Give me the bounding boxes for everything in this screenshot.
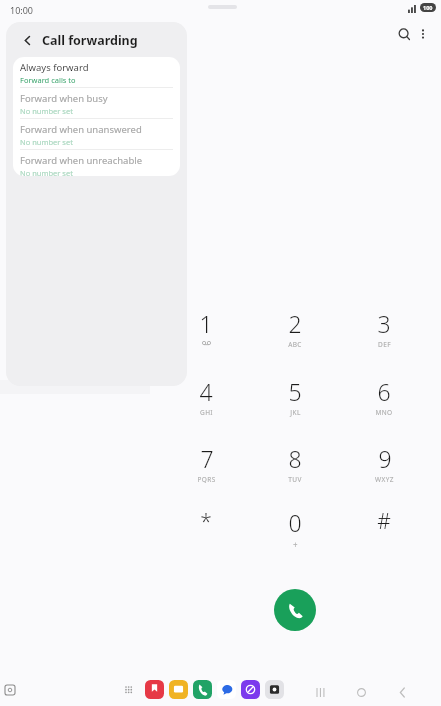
staticText: Call forwarding xyxy=(42,32,138,49)
staticText: No number set xyxy=(20,137,73,147)
staticText: GHI xyxy=(200,408,213,417)
staticText: 6 xyxy=(377,376,391,407)
button[interactable]: Recents panel xyxy=(2,682,18,698)
button[interactable]: Forward when unreachable xyxy=(13,150,180,176)
staticText: DEF xyxy=(378,340,391,349)
button[interactable]: * xyxy=(174,507,238,555)
button[interactable]: Apps xyxy=(121,682,138,699)
button[interactable]: App xyxy=(169,680,188,699)
button[interactable]: Forward when unanswered xyxy=(13,119,180,149)
staticText: 7 xyxy=(200,443,214,474)
staticText: 0 xyxy=(288,507,302,538)
staticText: 4 xyxy=(199,376,213,407)
staticText: + xyxy=(293,539,298,550)
staticText: ABC xyxy=(288,340,302,349)
staticText: 8 xyxy=(288,443,302,474)
staticText: 2 xyxy=(288,308,302,339)
button[interactable]: Search xyxy=(393,23,415,45)
button[interactable]: 4 xyxy=(174,376,238,424)
button[interactable]: 2 xyxy=(263,308,327,356)
button[interactable]: 8 xyxy=(263,443,327,491)
staticText: * xyxy=(200,507,212,536)
staticText: Forward when unreachable xyxy=(20,154,143,167)
button[interactable]: 7 xyxy=(174,443,238,491)
staticText: 3 xyxy=(377,308,391,339)
button[interactable]: # xyxy=(352,507,416,555)
staticText: 1 xyxy=(199,308,213,339)
staticText: JKL xyxy=(290,408,301,417)
button[interactable]: 5 xyxy=(263,376,327,424)
staticText: No number set xyxy=(20,168,73,176)
button[interactable]: 3 xyxy=(352,308,416,356)
button[interactable]: App xyxy=(241,680,260,699)
button[interactable]: Back xyxy=(393,683,411,701)
staticText: No number set xyxy=(20,106,73,116)
button[interactable]: Call xyxy=(274,589,316,631)
button[interactable]: 6 xyxy=(352,376,416,424)
button[interactable]: More options xyxy=(412,23,434,45)
button[interactable]: Always forward xyxy=(13,57,180,87)
button[interactable]: App xyxy=(193,680,212,699)
staticText: Forward when unanswered xyxy=(20,123,142,136)
staticText: WXYZ xyxy=(375,475,394,484)
button[interactable]: Recents xyxy=(311,683,329,701)
button[interactable]: 9 xyxy=(352,443,416,491)
staticText: 9 xyxy=(378,443,392,474)
staticText: TUV xyxy=(288,475,302,484)
staticText: 10:00 xyxy=(10,4,34,16)
staticText: 100 xyxy=(423,4,433,11)
staticText: Forward calls to xyxy=(20,75,76,85)
button[interactable]: Forward when busy xyxy=(13,88,180,118)
button[interactable]: 0 xyxy=(263,507,327,555)
button[interactable]: App xyxy=(145,680,164,699)
staticText: PQRS xyxy=(197,475,216,484)
staticText: # xyxy=(377,507,391,536)
button[interactable]: 1 xyxy=(174,308,238,356)
staticText: Forward when busy xyxy=(20,92,108,105)
button[interactable]: App xyxy=(265,680,284,699)
staticText: Always forward xyxy=(20,61,89,74)
button[interactable]: Home xyxy=(352,683,370,701)
staticText: 5 xyxy=(288,376,302,407)
staticText: MNO xyxy=(375,408,393,417)
button[interactable]: App xyxy=(217,680,236,699)
button[interactable]: Back xyxy=(16,29,38,51)
